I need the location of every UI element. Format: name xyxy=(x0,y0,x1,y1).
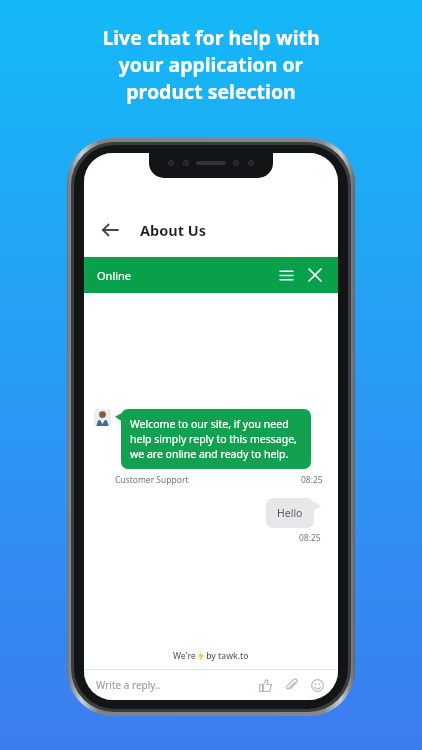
staticText: 08:25 xyxy=(301,474,323,486)
button[interactable]: Back xyxy=(97,217,123,243)
button[interactable]: Close xyxy=(305,265,325,285)
staticText: 08:25 xyxy=(299,532,321,544)
button[interactable]: Hello xyxy=(266,498,314,528)
staticText: Welcome to our site, if you need help si… xyxy=(130,417,302,461)
staticText: Write a reply.. xyxy=(96,678,161,692)
staticText: by tawk.to xyxy=(204,650,249,662)
staticText: Live chat for help with your application… xyxy=(0,24,422,105)
button[interactable]: Emoji xyxy=(308,676,326,694)
staticText: Customer Support xyxy=(115,474,189,486)
staticText: We're xyxy=(173,650,198,662)
staticText: About Us xyxy=(140,220,206,240)
staticText: Hello xyxy=(277,506,303,520)
button[interactable]: Attach file xyxy=(282,676,300,694)
button[interactable]: Welcome to our site, if you need help si… xyxy=(121,409,311,469)
staticText: Online xyxy=(97,268,132,283)
button[interactable]: Menu xyxy=(276,265,296,285)
button[interactable]: Like xyxy=(256,676,274,694)
